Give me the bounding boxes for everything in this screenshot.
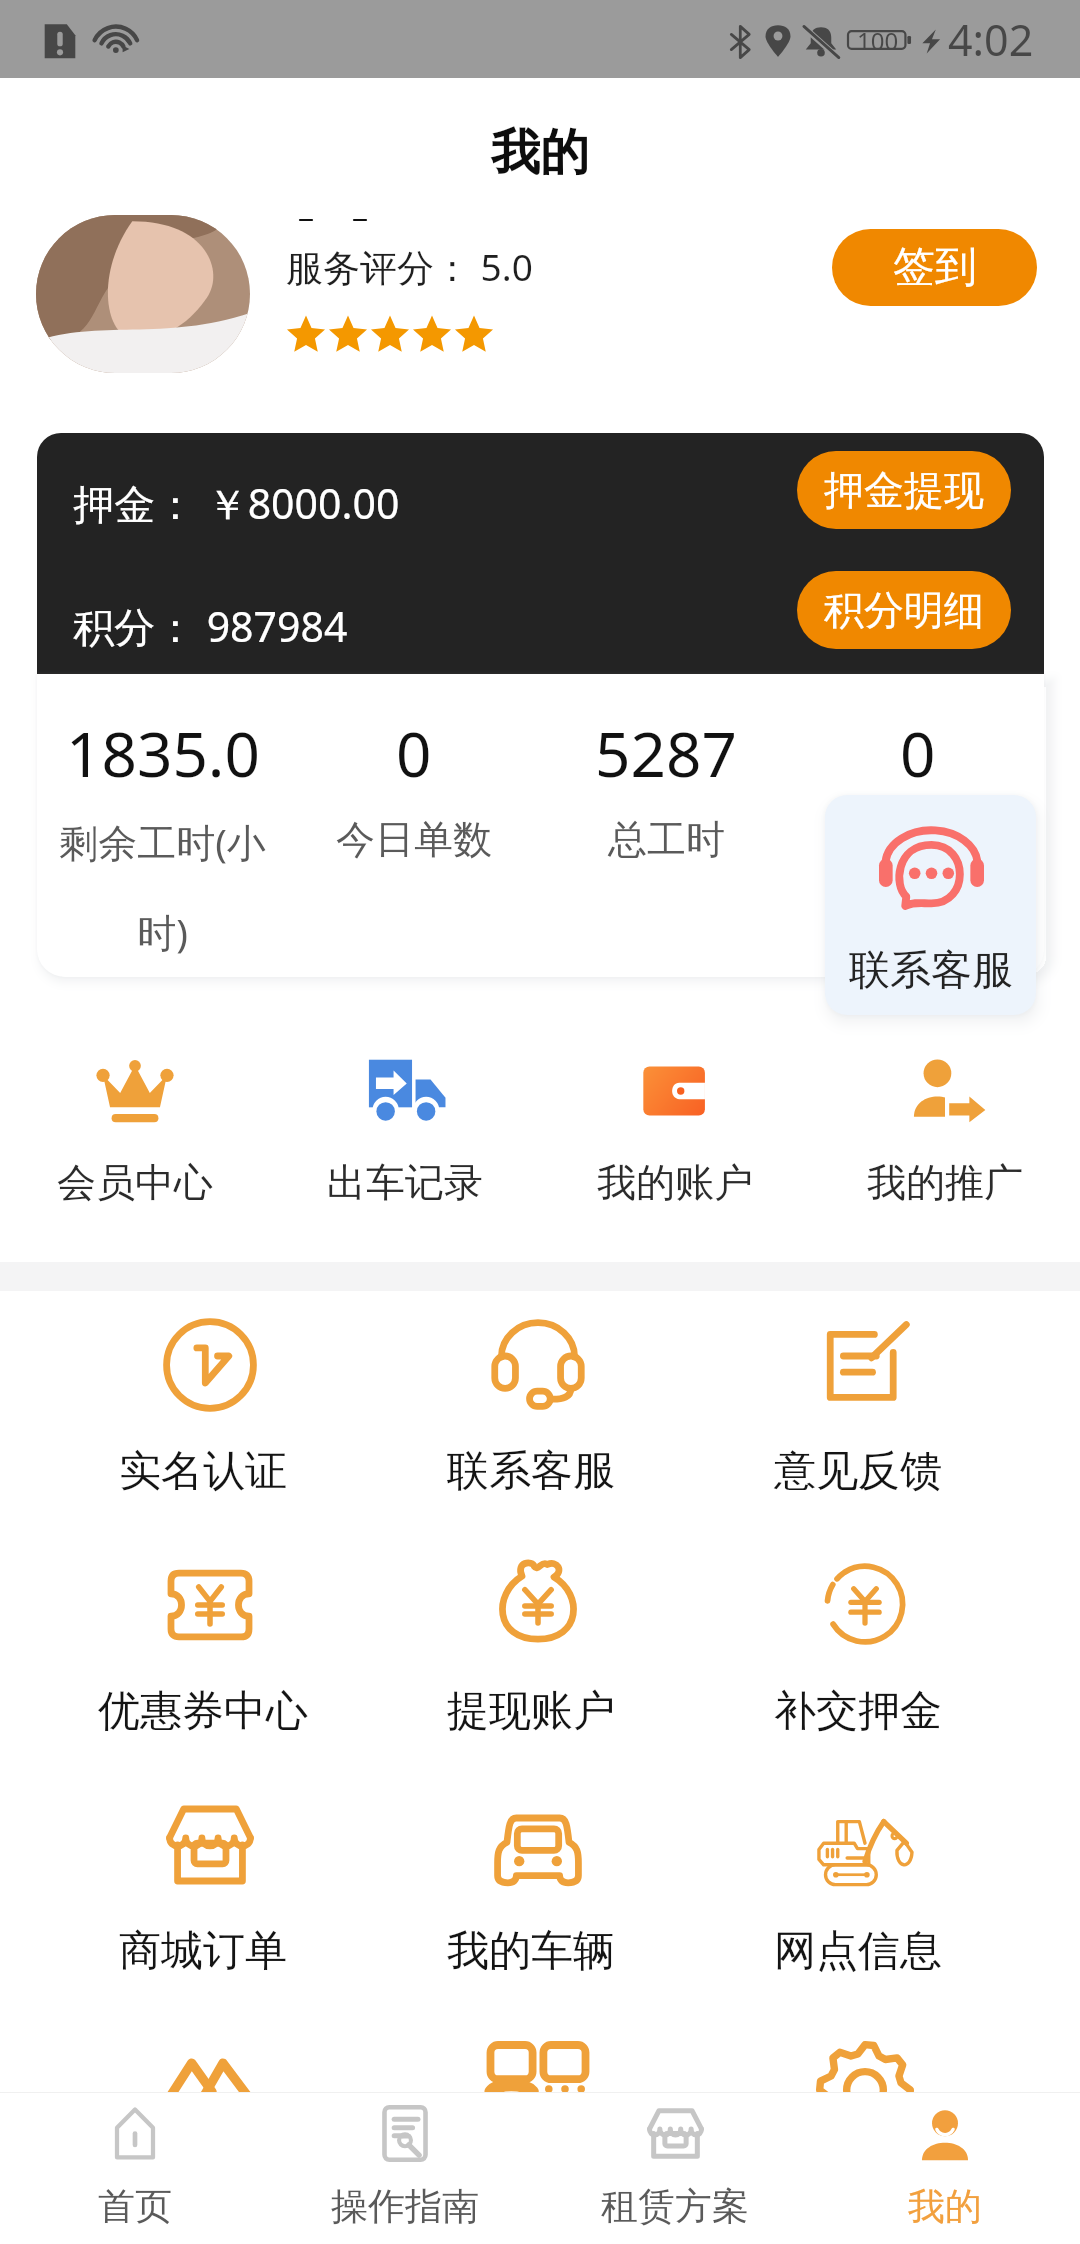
staticText: 我的推广 (867, 1158, 1023, 1207)
staticText: 补交押金 (774, 1685, 942, 1738)
button[interactable]: 联系客服 (825, 795, 1036, 1015)
staticText: 4:02 (948, 10, 1034, 69)
staticText: 意见反馈 (774, 1445, 942, 1498)
staticText: 我的账户 (597, 1158, 753, 1207)
button[interactable] (374, 2035, 701, 2244)
staticText: 联系客服 (849, 945, 1013, 997)
button[interactable]: 实名认证 (46, 1315, 374, 1555)
staticText: 0 (396, 711, 432, 795)
staticText: 服务评分： 5.0 (286, 241, 533, 292)
staticText: 我的 (491, 122, 589, 184)
button[interactable]: 提现账户 (374, 1555, 701, 1795)
button[interactable]: 签到 (832, 229, 1037, 306)
button[interactable]: 会员中心 (0, 1056, 270, 1207)
button[interactable]: 我的 (810, 2092, 1080, 2244)
button[interactable]: 出车记录 (270, 1056, 540, 1207)
button[interactable]: 我的账户 (540, 1056, 810, 1207)
staticText: 提现账户 (447, 1685, 615, 1738)
button[interactable]: 我的推广 (810, 1056, 1080, 1207)
button[interactable]: 优惠券中心 (46, 1555, 374, 1795)
staticText: 联系客服 (447, 1445, 615, 1498)
staticText: 签到 (893, 241, 977, 294)
button[interactable]: 首页 (0, 2092, 270, 2244)
staticText: 首页 (98, 2183, 172, 2230)
button[interactable]: 我的车辆 (374, 1795, 701, 2035)
staticText: 优惠券中心 (98, 1685, 308, 1738)
staticText: 实名认证 (119, 1445, 287, 1498)
staticText: 剩余工时(小时) (42, 815, 283, 959)
staticText: 0 (900, 711, 936, 795)
staticText: 押金： ￥8000.00 (73, 475, 400, 531)
button[interactable]: 补交押金 (701, 1555, 1028, 1795)
button[interactable]: 积分明细 (797, 571, 1011, 649)
staticText: 出车记录 (327, 1158, 483, 1207)
staticText: 总工时 (608, 815, 725, 864)
button[interactable] (46, 2035, 374, 2244)
staticText: 我的车辆 (447, 1925, 615, 1978)
button[interactable] (701, 2035, 1028, 2244)
staticText: 租赁方案 (601, 2183, 749, 2230)
staticText: 押金提现 (824, 465, 984, 515)
button[interactable]: 意见反馈 (701, 1315, 1028, 1555)
button[interactable]: 押金提现 (797, 451, 1011, 529)
button[interactable]: 网点信息 (701, 1795, 1028, 2035)
staticText: 5287 (595, 711, 737, 795)
button[interactable]: 操作指南 (270, 2092, 540, 2244)
staticText: 积分明细 (824, 585, 984, 635)
staticText: 网点信息 (774, 1925, 942, 1978)
staticText: 我的 (908, 2183, 982, 2230)
button[interactable]: 租赁方案 (540, 2092, 810, 2244)
staticText: 今日单数 (336, 815, 492, 864)
staticText: 100 (857, 24, 899, 57)
staticText: 操作指南 (331, 2183, 479, 2230)
staticText: 1835.0 (66, 711, 260, 795)
staticText: 会员中心 (57, 1158, 213, 1207)
staticText: 商城订单 (119, 1925, 287, 1978)
button[interactable]: 商城订单 (46, 1795, 374, 2035)
button[interactable]: 联系客服 (374, 1315, 701, 1555)
staticText: 积分： 987984 (73, 598, 348, 654)
